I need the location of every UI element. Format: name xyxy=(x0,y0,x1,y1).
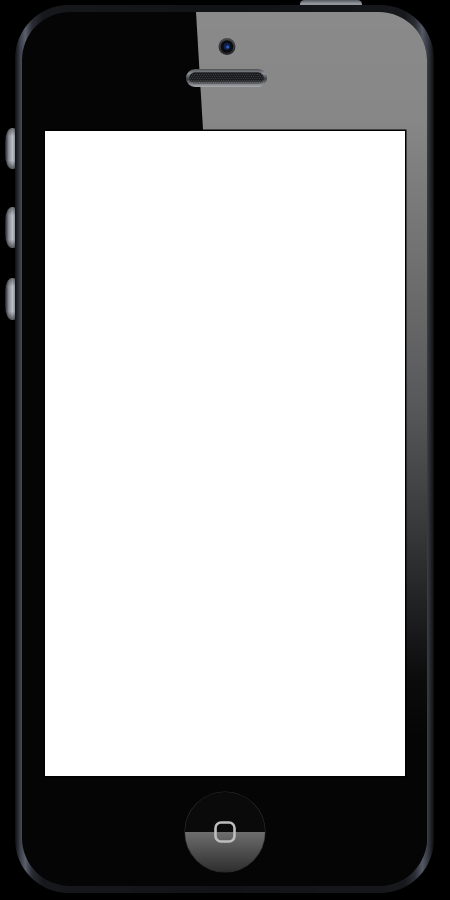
button[interactable]: Phone mockup xyxy=(0,0,450,900)
